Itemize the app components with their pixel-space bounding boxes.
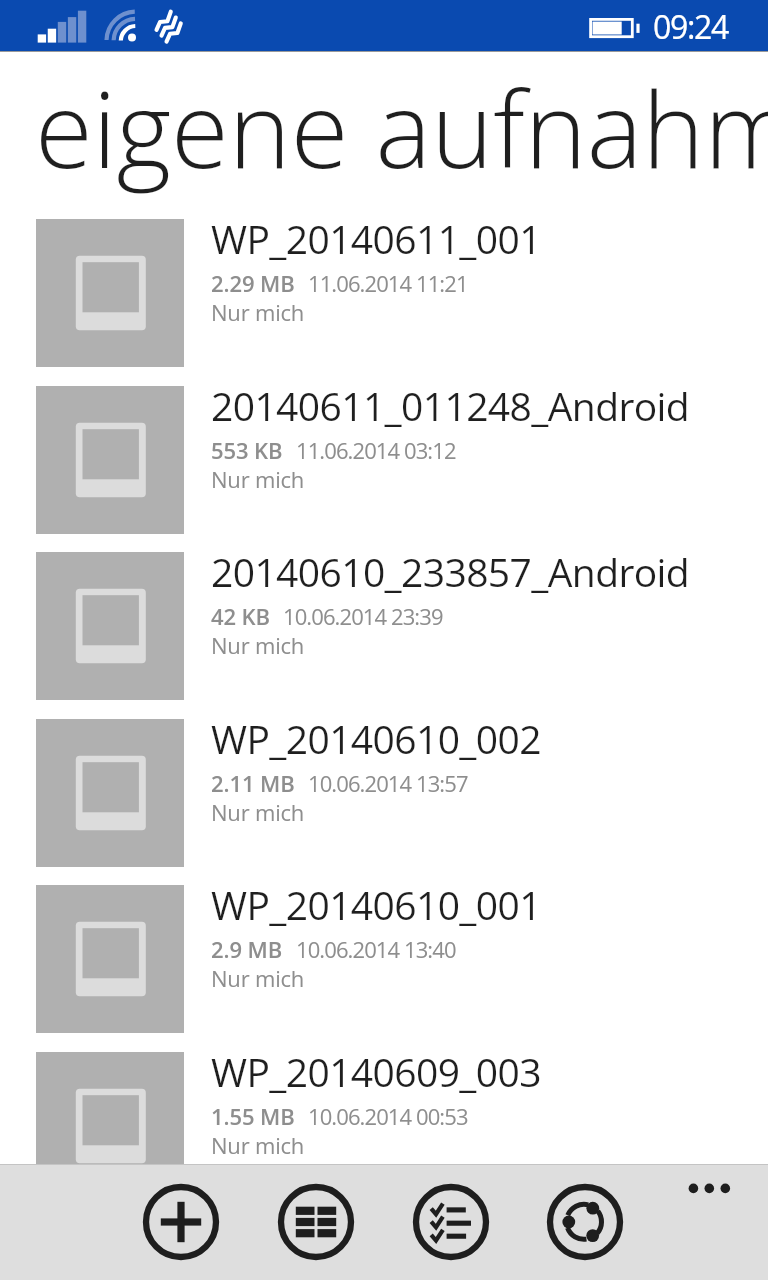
button[interactable]: Add — [141, 1182, 221, 1262]
staticText: 2.9 MB — [211, 934, 283, 964]
staticText: 2.29 MB — [211, 268, 295, 298]
staticText: WP_20140611_001 — [211, 212, 541, 265]
staticText: 10.06.2014 23:39 — [283, 601, 443, 631]
staticText: Nur mich — [211, 1130, 305, 1160]
button[interactable]: Grid view — [276, 1182, 356, 1262]
staticText: WP_20140610_001 — [211, 878, 541, 931]
button[interactable]: WP_20140609_003 — [0, 1052, 768, 1218]
staticText: Nur mich — [211, 963, 305, 993]
button[interactable]: WP_20140611_001 — [0, 219, 768, 385]
staticText: 10.06.2014 13:57 — [308, 768, 468, 798]
staticText: 10.06.2014 13:40 — [296, 934, 456, 964]
button[interactable]: Select items — [411, 1182, 491, 1262]
staticText: eigene aufnahmen — [35, 56, 768, 199]
staticText: 11.06.2014 11:21 — [308, 268, 468, 298]
button[interactable]: WP_20140610_002 — [0, 719, 768, 885]
staticText: 2.11 MB — [211, 768, 295, 798]
staticText: 10.06.2014 00:53 — [308, 1101, 468, 1131]
button[interactable]: WP_20140610_001 — [0, 885, 768, 1051]
staticText: 11.06.2014 03:12 — [296, 435, 456, 465]
staticText: WP_20140610_002 — [211, 712, 541, 765]
staticText: Nur mich — [211, 797, 305, 827]
staticText: WP_20140609_003 — [211, 1045, 541, 1098]
staticText: 20140610_233857_Android — [211, 545, 690, 598]
staticText: 20140611_011248_Android — [211, 379, 690, 432]
staticText: Nur mich — [211, 297, 305, 327]
staticText: Nur mich — [211, 464, 305, 494]
staticText: 42 KB — [211, 601, 270, 631]
staticText: Nur mich — [211, 630, 305, 660]
button[interactable]: Share — [545, 1182, 625, 1262]
staticText: 553 KB — [211, 435, 283, 465]
staticText: 1.55 MB — [211, 1101, 295, 1131]
button[interactable]: More options — [684, 1179, 734, 1199]
staticText: 09:24 — [653, 5, 729, 49]
button[interactable]: 20140611_011248_Android — [0, 386, 768, 552]
button[interactable]: 20140610_233857_Android — [0, 552, 768, 718]
